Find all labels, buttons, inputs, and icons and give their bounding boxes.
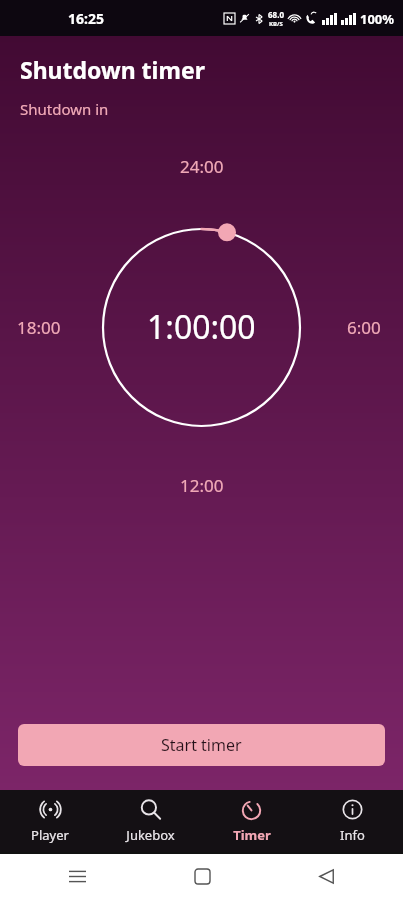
staticText: Info (340, 826, 365, 844)
button[interactable]: Back (309, 859, 343, 893)
staticText: Shutdown timer (20, 54, 205, 85)
button[interactable]: Menu (60, 859, 94, 893)
staticText: Jukebox (126, 826, 175, 844)
staticText: Player (31, 826, 69, 844)
staticText: 12:00 (180, 474, 224, 497)
staticText: 24:00 (180, 155, 224, 178)
staticText: 100% (360, 10, 395, 28)
staticText: KB/S (269, 20, 283, 28)
staticText: Shutdown in (20, 99, 109, 119)
button[interactable]: Jukebox (100, 790, 201, 852)
button[interactable]: Home (185, 859, 219, 893)
staticText: 68.0 (268, 9, 284, 20)
button[interactable]: Start timer (18, 724, 385, 766)
button[interactable]: Info (302, 790, 403, 852)
staticText: Timer (233, 826, 271, 844)
staticText: 18:00 (17, 316, 61, 339)
button[interactable]: Player (0, 790, 100, 852)
staticText: 1:00:00 (147, 305, 256, 349)
staticText: Start timer (161, 734, 242, 756)
staticText: 6:00 (347, 316, 381, 339)
button[interactable]: Timer (201, 790, 302, 852)
button[interactable]: Timer duration dial (94, 220, 309, 435)
staticText: 16:25 (68, 9, 104, 28)
